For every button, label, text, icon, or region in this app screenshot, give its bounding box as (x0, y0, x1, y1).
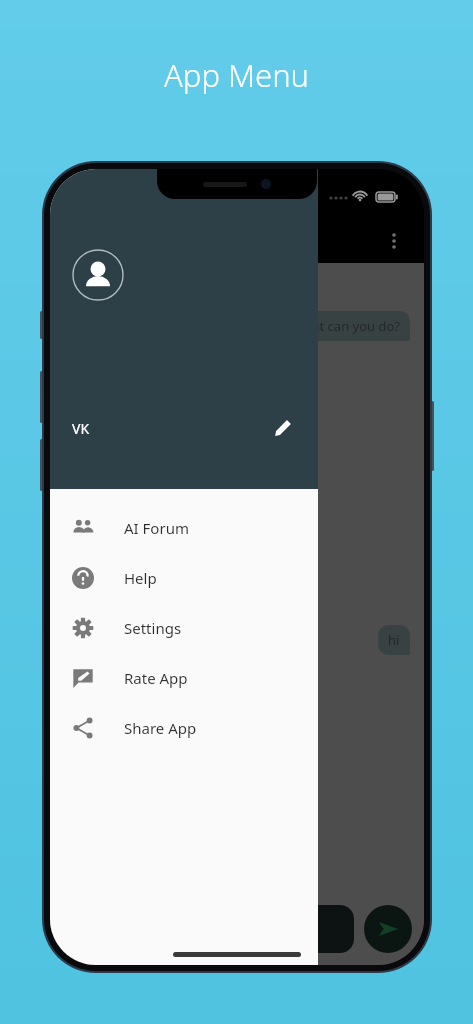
button[interactable] (62, 905, 354, 953)
staticText: Hello! How can I help you today? (74, 277, 273, 295)
staticText: what can you do? (294, 317, 400, 335)
staticText: App Menu (0, 54, 473, 96)
button[interactable]: Rate App (50, 653, 318, 703)
button[interactable]: AI Forum (50, 503, 318, 553)
staticText: Rate App (124, 668, 188, 688)
staticText: Settings (124, 618, 182, 638)
button[interactable]: Settings (50, 603, 318, 653)
staticText: Help (124, 568, 157, 588)
staticText: Share App (124, 718, 197, 738)
staticText: hi (388, 631, 400, 649)
staticText: AI Forum (124, 518, 189, 538)
staticText: I can help with many things, whether it … (74, 357, 304, 579)
button[interactable]: Share App (50, 703, 318, 753)
button[interactable]: Edit profile (266, 411, 300, 445)
staticText: VK (72, 419, 90, 438)
button[interactable]: Send (364, 905, 412, 953)
button[interactable]: More options (374, 221, 414, 261)
button[interactable]: Help (50, 553, 318, 603)
